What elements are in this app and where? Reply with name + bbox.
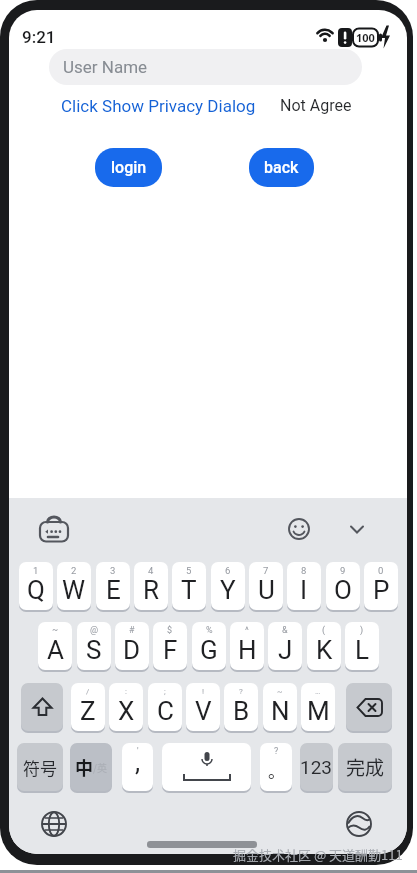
button[interactable]: , (122, 743, 153, 791)
button[interactable] (186, 683, 220, 731)
button[interactable]: 符号 (17, 743, 63, 791)
staticText: Click Show Privacy Dialog (61, 96, 256, 116)
staticText: I (300, 575, 308, 605)
staticText: 7 (263, 565, 269, 576)
button[interactable] (162, 743, 251, 791)
staticText: 8 (301, 565, 307, 576)
button[interactable] (249, 562, 283, 610)
button[interactable]: 中 (70, 743, 112, 791)
button[interactable] (153, 622, 187, 670)
button[interactable] (268, 622, 302, 670)
button[interactable] (71, 683, 105, 731)
button[interactable] (288, 518, 310, 540)
staticText: 123 (300, 756, 333, 778)
button[interactable] (307, 622, 341, 670)
staticText: ; (164, 687, 166, 696)
staticText: A (47, 635, 64, 665)
button[interactable] (148, 683, 182, 731)
button[interactable] (346, 811, 372, 837)
button[interactable]: back (249, 148, 314, 187)
staticText: ( (322, 625, 326, 636)
staticText: : (125, 687, 127, 696)
staticText: U (258, 575, 275, 605)
button[interactable] (263, 683, 297, 731)
staticText: 完成 (346, 753, 385, 781)
staticText: login (111, 158, 147, 177)
button[interactable] (287, 562, 321, 610)
button[interactable] (211, 562, 245, 610)
button[interactable]: login (95, 148, 162, 187)
staticText: 符号 (23, 755, 57, 780)
staticText: 0 (378, 565, 384, 576)
button[interactable]: Click Show Privacy Dialog (61, 96, 256, 116)
button[interactable] (38, 515, 72, 553)
button[interactable] (57, 562, 91, 610)
button[interactable] (115, 622, 149, 670)
staticText: ~ (52, 625, 59, 636)
button[interactable]: User Name (49, 49, 362, 85)
button[interactable] (301, 683, 335, 731)
staticText: $ (167, 625, 173, 636)
staticText: 1 (33, 565, 39, 576)
staticText: 4 (148, 565, 154, 576)
button[interactable] (230, 622, 264, 670)
staticText: 100 (356, 30, 375, 45)
staticText: , (135, 747, 141, 777)
staticText: back (264, 158, 299, 177)
button[interactable] (172, 562, 206, 610)
staticText: O (334, 575, 352, 605)
staticText: ? (274, 746, 279, 757)
staticText: 中 (75, 754, 93, 780)
button[interactable] (41, 811, 67, 837)
staticText: Q (27, 575, 45, 605)
button[interactable] (77, 622, 111, 670)
button[interactable] (346, 683, 392, 731)
staticText: 2 (71, 565, 77, 576)
button[interactable] (326, 562, 360, 610)
button[interactable] (109, 683, 143, 731)
staticText: ^ (245, 625, 249, 636)
staticText: & (282, 625, 288, 636)
staticText: @ (90, 625, 99, 636)
staticText: K (316, 635, 333, 665)
button[interactable] (19, 562, 53, 610)
staticText: E (106, 575, 121, 605)
button[interactable] (345, 622, 379, 670)
button[interactable] (192, 622, 226, 670)
staticText: S (86, 635, 102, 665)
button[interactable]: 。 (260, 743, 292, 791)
staticText: M (307, 696, 330, 726)
staticText: 掘金技术社区 @ 天道酬勤111 (233, 845, 403, 864)
button[interactable]: Not Agree (280, 96, 352, 115)
button[interactable]: 完成 (338, 743, 392, 791)
staticText: D (123, 635, 141, 665)
staticText: B (233, 696, 250, 726)
button[interactable] (134, 562, 168, 610)
staticText: 5 (186, 565, 192, 576)
button[interactable] (224, 683, 258, 731)
button[interactable] (364, 562, 398, 610)
staticText: ) (360, 625, 364, 636)
staticText: P (373, 575, 390, 605)
staticText: 。 (268, 758, 285, 783)
staticText: C (157, 696, 174, 726)
staticText: 9 (340, 565, 346, 576)
staticText: 3 (110, 565, 116, 576)
staticText: /英 (93, 760, 107, 774)
button[interactable] (21, 683, 63, 731)
staticText: J (278, 635, 293, 665)
staticText: ' (137, 746, 139, 757)
staticText: N (271, 696, 290, 726)
staticText: Not Agree (280, 96, 352, 115)
button[interactable]: 123 (300, 743, 333, 791)
button[interactable] (96, 562, 130, 610)
button[interactable] (38, 622, 72, 670)
staticText: ! (202, 687, 205, 696)
staticText: G (200, 635, 218, 665)
staticText: X (118, 696, 135, 726)
staticText: 6 (225, 565, 231, 576)
button[interactable] (350, 525, 364, 535)
staticText: F (163, 635, 178, 665)
staticText: 9:21 (22, 27, 56, 47)
staticText: Y (220, 575, 236, 605)
